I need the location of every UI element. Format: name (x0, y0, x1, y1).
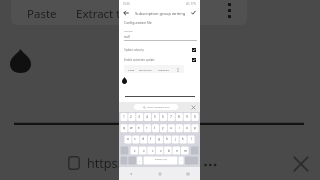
staticText: https: (87, 155, 121, 171)
staticText: Clipboard (158, 68, 169, 71)
button[interactable]: Extract text (76, 6, 119, 22)
staticText: Configuration file (124, 20, 152, 25)
staticText: f (150, 137, 152, 141)
staticText: s (134, 137, 136, 141)
staticText: Subscription group writing (135, 11, 186, 16)
staticText: u (170, 126, 172, 130)
staticText: m (184, 149, 187, 153)
staticText: a (127, 137, 129, 141)
staticText: 9 (186, 115, 188, 119)
staticText: https://example.com (147, 106, 170, 109)
staticText: null (124, 34, 130, 39)
staticText: 2 (130, 115, 132, 119)
button[interactable]: Subscription group writing (135, 9, 189, 18)
staticText: x (143, 149, 145, 153)
staticText: 4 (146, 115, 148, 119)
staticText: . (181, 158, 182, 162)
staticText: w (130, 126, 133, 130)
staticText: j (175, 137, 176, 141)
button[interactable]: https: (68, 155, 121, 171)
staticText: d (142, 137, 144, 141)
staticText: 10:06 (123, 2, 130, 6)
staticText: Paste (27, 6, 57, 22)
button[interactable] (11, 0, 247, 25)
staticText: n (176, 149, 178, 153)
staticText: e (138, 126, 140, 130)
staticText: 3 (138, 115, 140, 119)
staticText: Enable automatic update (124, 58, 155, 62)
staticText: l (191, 137, 192, 141)
staticText: 4G 97% (186, 2, 196, 6)
staticText: r (146, 126, 148, 130)
staticText: Extract text (76, 6, 119, 22)
staticText: q (123, 126, 125, 130)
button[interactable]: https://example.com (134, 104, 178, 110)
staticText: p (194, 126, 196, 130)
staticText: t (154, 126, 156, 130)
button[interactable]: More options (225, 3, 234, 20)
staticText: English (US) (155, 158, 168, 161)
staticText: o (186, 126, 188, 130)
staticText: 1 (123, 115, 125, 119)
staticText: Paste (128, 68, 135, 71)
staticText: i (179, 126, 180, 130)
staticText: 6 (162, 115, 164, 119)
staticText: v (160, 149, 162, 153)
button[interactable]: Home (157, 171, 163, 177)
button[interactable]: Recents (185, 171, 191, 177)
staticText: 7 (170, 115, 172, 119)
staticText: website (124, 29, 133, 32)
button[interactable]: Close (293, 156, 309, 172)
staticText: k (182, 137, 184, 141)
staticText: z (134, 149, 136, 153)
staticText: Update subscrip (124, 48, 144, 52)
button[interactable]: Clear (191, 105, 196, 110)
staticText: 5 (154, 115, 156, 119)
staticText: c (152, 149, 154, 153)
button[interactable]: Paste (124, 65, 184, 73)
button[interactable]: Back (122, 9, 130, 17)
staticText: g (158, 137, 160, 141)
staticText: b (168, 149, 170, 153)
staticText: , (139, 158, 140, 162)
button[interactable]: Paste (27, 6, 57, 22)
staticText: 8 (178, 115, 180, 119)
button[interactable]: Confirm (190, 9, 197, 16)
staticText: y (162, 126, 164, 130)
staticText: h (166, 137, 168, 141)
button[interactable]: Update subscrip (124, 47, 196, 52)
staticText: Extract text (139, 68, 152, 71)
button[interactable]: Back (128, 171, 134, 177)
button[interactable]: 1 (119, 112, 200, 167)
staticText: 0 (194, 115, 196, 119)
button[interactable]: Enable automatic update (124, 57, 196, 62)
